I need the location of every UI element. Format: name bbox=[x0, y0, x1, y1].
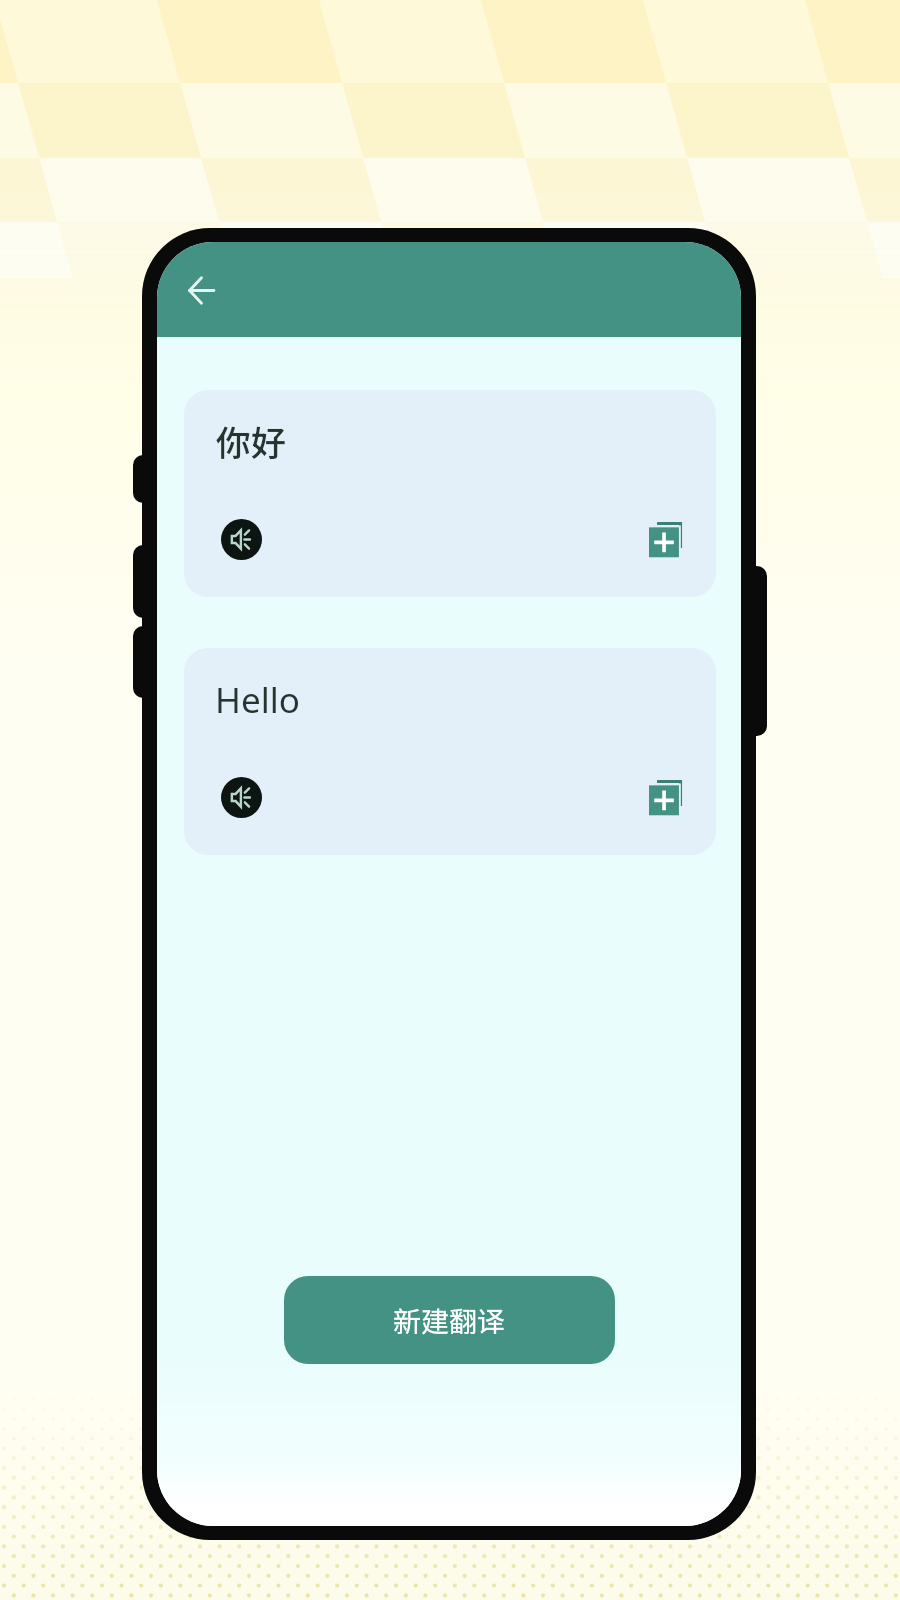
button[interactable]: Back bbox=[178, 267, 224, 313]
button[interactable]: Copy to collection bbox=[645, 516, 687, 558]
button[interactable]: Play pronunciation bbox=[221, 519, 262, 560]
staticText: 你好 bbox=[216, 415, 287, 466]
button[interactable]: 你好 bbox=[184, 390, 716, 597]
button[interactable]: 新建翻译 bbox=[284, 1276, 615, 1364]
button[interactable]: Copy to collection bbox=[645, 774, 687, 816]
button[interactable]: Play pronunciation bbox=[221, 777, 262, 818]
button[interactable]: Hello bbox=[184, 648, 716, 855]
staticText: 新建翻译 bbox=[393, 1300, 506, 1341]
staticText: Hello bbox=[215, 676, 300, 724]
